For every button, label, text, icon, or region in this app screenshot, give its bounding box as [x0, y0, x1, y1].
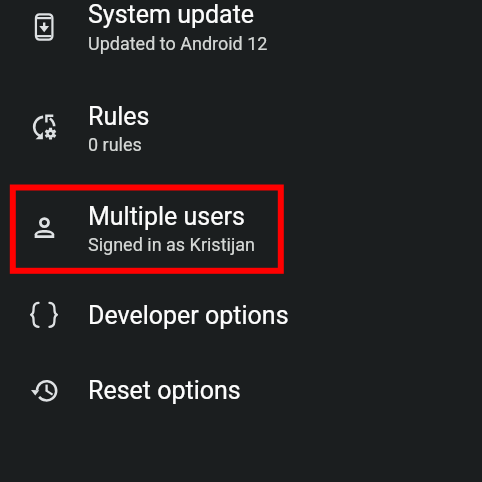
- button[interactable]: Rules: [0, 78, 482, 178]
- button[interactable]: Reset options: [0, 353, 482, 428]
- staticText: Developer options: [88, 301, 289, 330]
- button[interactable]: System update: [0, 0, 482, 78]
- staticText: Updated to Android 12: [88, 33, 268, 54]
- staticText: System update: [88, 0, 255, 29]
- button[interactable]: Developer options: [0, 278, 482, 353]
- staticText: Reset options: [88, 376, 241, 405]
- staticText: Rules: [88, 102, 150, 131]
- button[interactable]: Multiple users: [0, 178, 482, 278]
- staticText: Multiple users: [88, 202, 245, 231]
- staticText: Signed in as Kristijan: [88, 234, 255, 255]
- staticText: 0 rules: [88, 134, 142, 155]
